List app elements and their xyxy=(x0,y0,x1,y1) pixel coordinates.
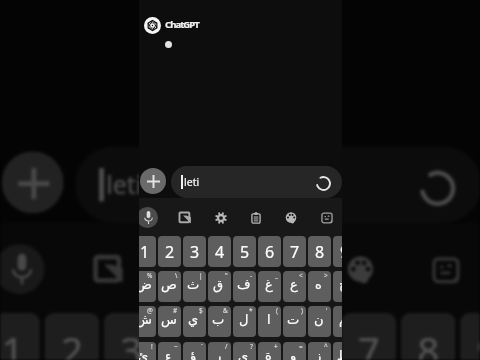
button[interactable]: Settings xyxy=(205,198,237,237)
button[interactable]: 5 xyxy=(233,236,256,267)
button[interactable]: Clipboard xyxy=(240,198,272,237)
button[interactable]: ) xyxy=(283,306,306,337)
staticText: / xyxy=(225,342,228,351)
staticText: ه xyxy=(315,277,322,292)
staticText: 4 xyxy=(180,325,204,360)
staticText: < xyxy=(299,271,303,280)
button[interactable]: leti xyxy=(75,147,480,223)
staticText: " xyxy=(225,271,228,280)
button[interactable]: Voice input xyxy=(139,207,158,228)
staticText: ! xyxy=(151,342,153,351)
staticText: 3 xyxy=(190,241,200,263)
button[interactable]: ( xyxy=(258,306,281,337)
button[interactable]: Translate xyxy=(71,223,147,315)
staticText: غ xyxy=(265,277,273,292)
button[interactable]: 7 xyxy=(341,313,396,360)
staticText: # xyxy=(173,306,178,315)
staticText: 2 xyxy=(61,325,85,360)
button[interactable]: ! xyxy=(139,342,156,360)
staticText: ع xyxy=(290,277,298,292)
staticText: ظ xyxy=(337,348,342,360)
button[interactable]: 6 xyxy=(282,313,337,360)
button[interactable]: 9 xyxy=(333,236,342,267)
button[interactable]: Stickers xyxy=(311,198,342,237)
button[interactable]: Theme xyxy=(322,223,398,315)
button[interactable]: Stickers xyxy=(408,223,480,315)
button[interactable]: 9 xyxy=(460,313,480,360)
button[interactable]: Settings xyxy=(156,223,232,315)
button[interactable]: 2 xyxy=(158,236,181,267)
button[interactable]: ^ xyxy=(308,342,331,360)
staticText: ~ xyxy=(174,342,178,351)
button[interactable]: 5 xyxy=(223,313,277,360)
button[interactable]: _ xyxy=(258,271,281,302)
button[interactable]: ` xyxy=(183,342,206,360)
button[interactable]: 8 xyxy=(401,313,455,360)
button[interactable]: Add attachment xyxy=(2,151,64,213)
button[interactable]: 6 xyxy=(258,236,281,267)
staticText: ث xyxy=(187,277,200,292)
staticText: ؤ xyxy=(190,348,197,360)
button[interactable]: % xyxy=(139,271,156,302)
button[interactable]: { xyxy=(333,271,342,302)
staticText: 8 xyxy=(417,325,441,360)
staticText: | xyxy=(199,271,203,280)
staticText: 8 xyxy=(315,241,325,263)
button[interactable]: $ xyxy=(183,306,206,337)
staticText: leti xyxy=(106,168,144,201)
staticText: ر xyxy=(215,348,222,360)
staticText: ChatGPT xyxy=(165,18,199,31)
staticText: 9 xyxy=(477,325,480,360)
button[interactable]: @ xyxy=(139,306,156,337)
button[interactable]: 4 xyxy=(208,236,231,267)
staticText: 4 xyxy=(215,241,225,263)
staticText: ا xyxy=(267,312,271,327)
staticText: 7 xyxy=(358,325,382,360)
button[interactable]: Translate xyxy=(169,198,201,237)
button[interactable]: & xyxy=(208,306,231,337)
button[interactable]: * xyxy=(233,306,256,337)
button[interactable]: ' xyxy=(308,306,331,337)
button[interactable]: 2 xyxy=(45,313,99,360)
button[interactable]: ; xyxy=(333,306,342,337)
button[interactable]: = xyxy=(283,342,306,360)
staticText: ئ xyxy=(139,348,149,360)
button[interactable]: / xyxy=(208,342,231,360)
staticText: خ xyxy=(339,277,342,292)
staticText: ص xyxy=(161,277,177,292)
button[interactable]: [ xyxy=(333,342,342,360)
button[interactable]: # xyxy=(158,306,181,337)
staticText: ' xyxy=(326,306,328,315)
button[interactable]: Theme xyxy=(275,198,307,237)
staticText: 2 xyxy=(165,241,175,263)
button[interactable]: \ xyxy=(158,271,181,302)
button[interactable]: 1 xyxy=(139,236,156,267)
staticText: ة xyxy=(265,348,272,360)
staticText: 7 xyxy=(290,241,300,263)
button[interactable]: ? xyxy=(233,342,256,360)
staticText: ى xyxy=(238,348,249,360)
button[interactable]: 1 xyxy=(0,313,40,360)
button[interactable]: Clipboard xyxy=(239,223,315,315)
staticText: ض xyxy=(139,277,152,292)
staticText: ل xyxy=(239,312,249,327)
button[interactable]: ~ xyxy=(158,342,181,360)
button[interactable]: Add attachment xyxy=(140,168,166,194)
button[interactable]: 7 xyxy=(283,236,306,267)
staticText: > xyxy=(324,271,328,280)
staticText: ق xyxy=(213,277,224,292)
staticText: ^ xyxy=(324,342,328,351)
button[interactable]: " xyxy=(208,271,231,302)
button[interactable]: 8 xyxy=(308,236,331,267)
button[interactable]: < xyxy=(283,271,306,302)
button[interactable]: | xyxy=(183,271,206,302)
button[interactable]: 3 xyxy=(104,313,158,360)
staticText: م xyxy=(339,312,342,327)
button[interactable]: Voice input xyxy=(0,244,45,294)
button[interactable]: leti xyxy=(171,166,342,198)
button[interactable]: > xyxy=(308,271,331,302)
button[interactable]: - xyxy=(233,271,256,302)
button[interactable]: 3 xyxy=(183,236,206,267)
button[interactable]: 4 xyxy=(163,313,218,360)
button[interactable]: + xyxy=(258,342,281,360)
